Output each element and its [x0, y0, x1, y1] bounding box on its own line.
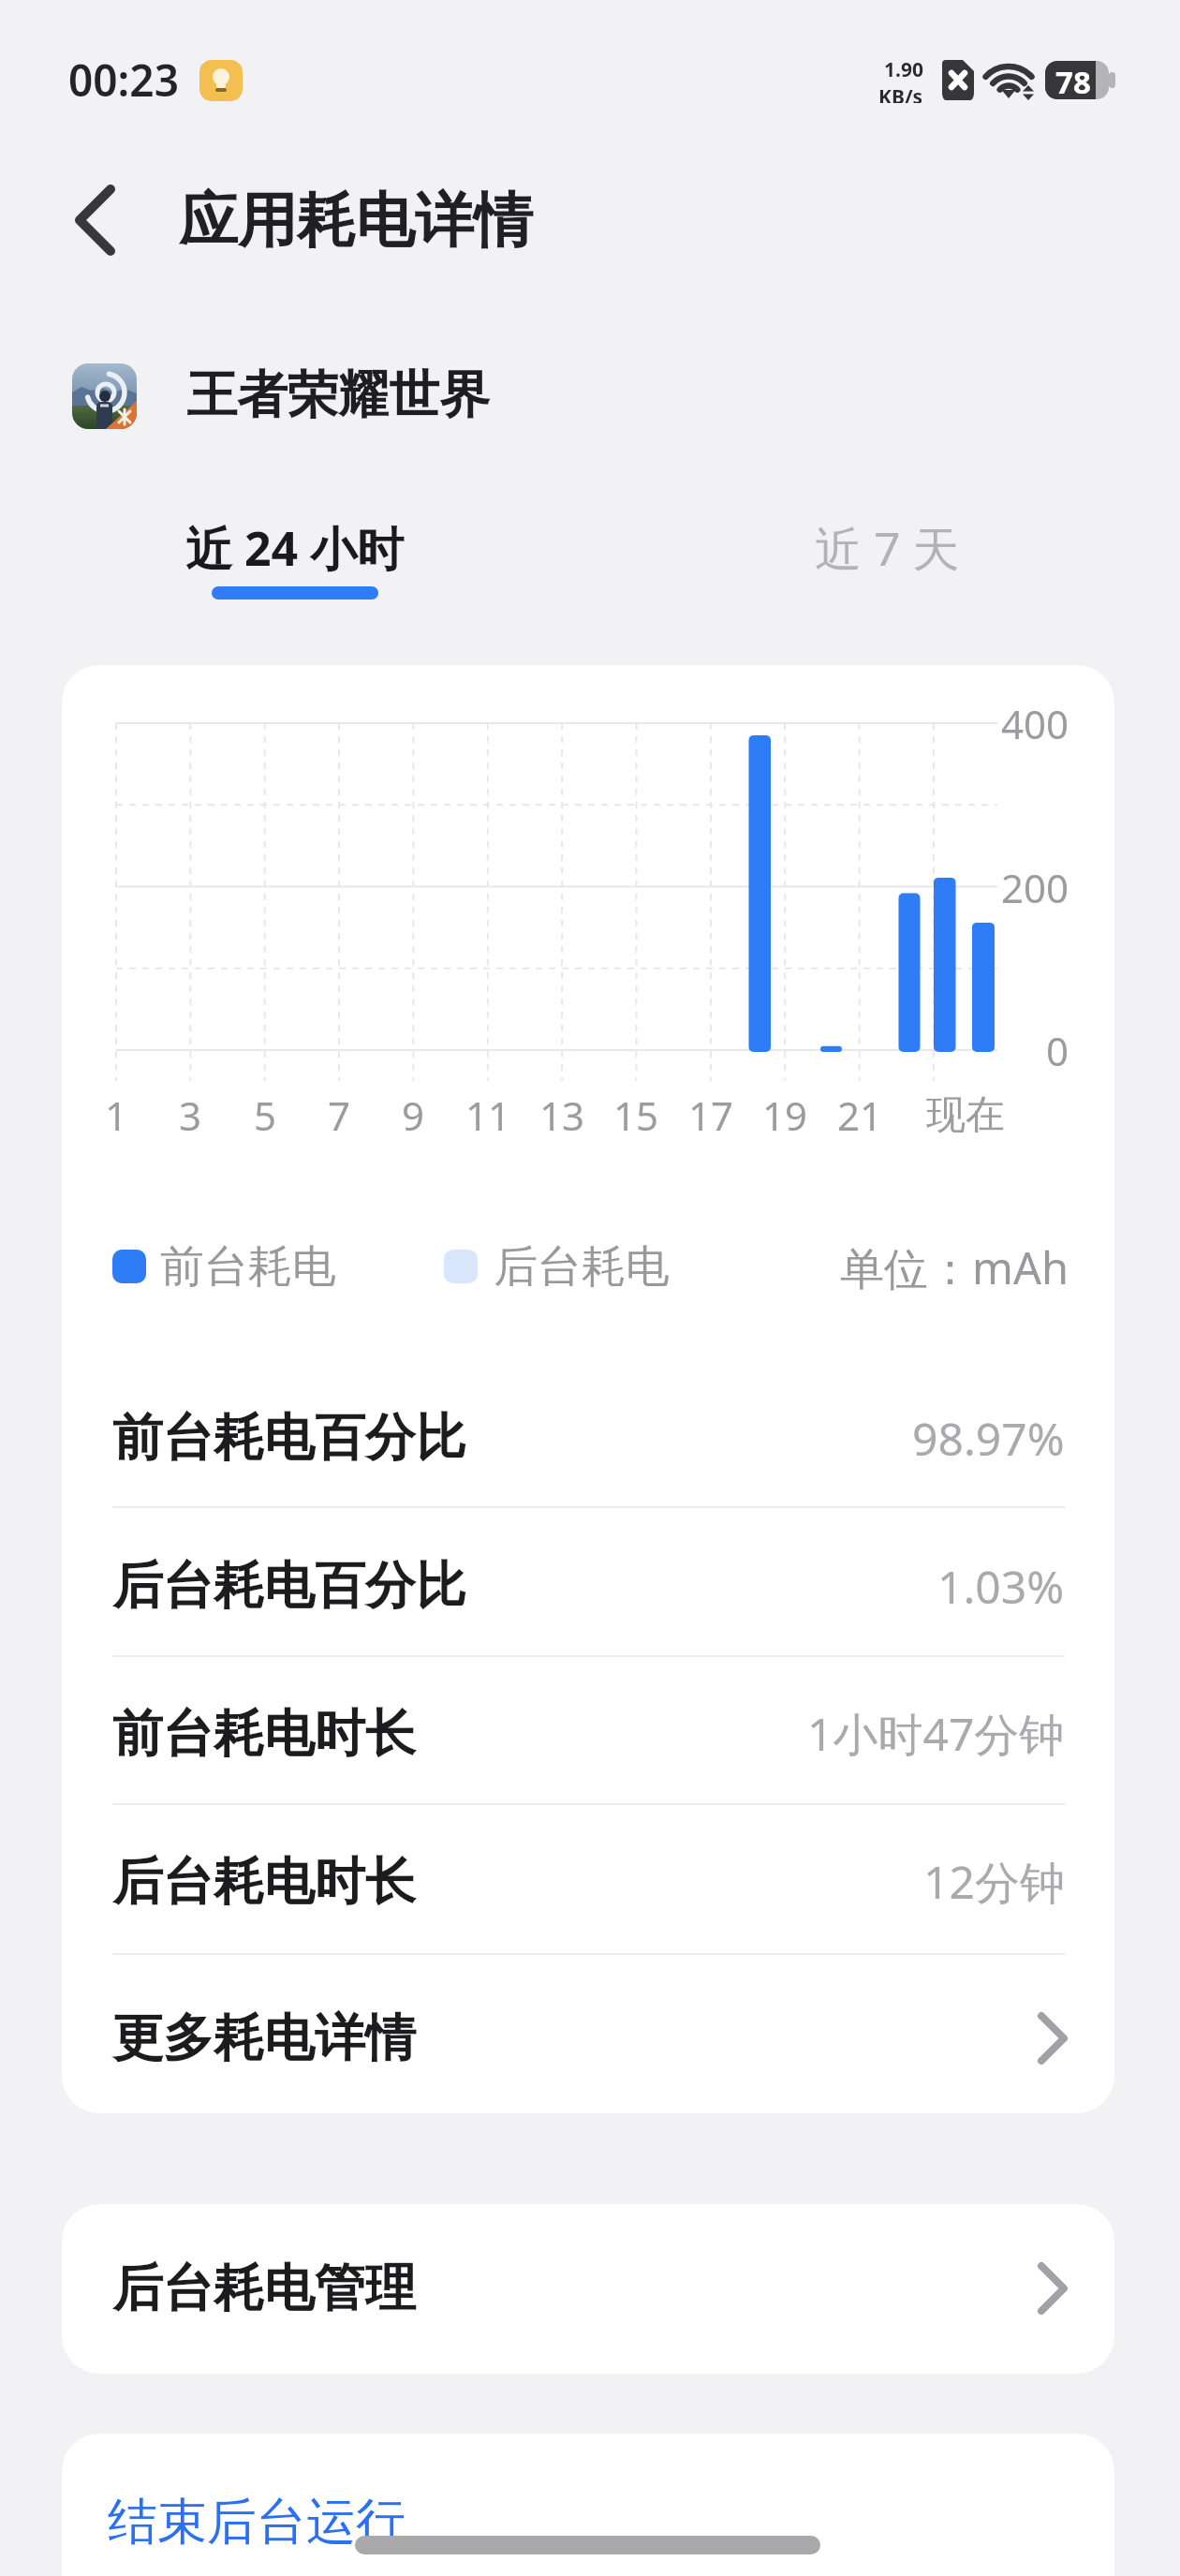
staticText: 19 [762, 1088, 808, 1142]
staticText: 王者荣耀世界 [186, 363, 490, 427]
staticText: 更多耗电详情 [112, 2006, 416, 2070]
button[interactable] [56, 173, 150, 267]
staticText: 98.97% [912, 1408, 1065, 1469]
staticText: 单位：mAh [840, 1237, 1069, 1297]
staticText: 7 [328, 1088, 351, 1142]
staticText: 1.90 [884, 56, 923, 83]
staticText: 现在 [926, 1090, 1005, 1140]
staticText: 0 [1046, 1024, 1069, 1077]
staticText: 前台耗电 [160, 1239, 336, 1295]
button[interactable]: 近 24 小时 [169, 506, 431, 618]
staticText: 15 [613, 1088, 659, 1142]
staticText: 后台耗电 [494, 1239, 670, 1295]
staticText: 近 7 天 [815, 516, 960, 580]
staticText: 17 [688, 1088, 734, 1142]
staticText: 前台耗电时长 [112, 1702, 416, 1766]
staticText: 00:23 [68, 51, 179, 110]
button[interactable]: 结束后台运行 [62, 2434, 1114, 2576]
staticText: 5 [254, 1088, 277, 1142]
staticText: 21 [837, 1088, 883, 1142]
staticText: 1小时47分钟 [807, 1703, 1065, 1765]
staticText: 前台耗电百分比 [112, 1406, 466, 1470]
staticText: 11 [465, 1088, 511, 1142]
staticText: 结束后台运行 [108, 2491, 406, 2554]
button[interactable]: 更多耗电详情 [62, 1965, 1114, 2111]
staticText: 3 [179, 1088, 202, 1142]
staticText: 12分钟 [923, 1851, 1065, 1913]
staticText: 近 24 小时 [185, 516, 405, 580]
staticText: 1.03% [937, 1556, 1065, 1617]
button[interactable]: 后台耗电管理 [62, 2204, 1114, 2374]
staticText: 78 [1055, 61, 1091, 100]
staticText: KB/s [878, 83, 923, 103]
button[interactable]: 近 7 天 [796, 506, 1002, 618]
staticText: 后台耗电时长 [112, 1850, 416, 1914]
staticText: 200 [1001, 861, 1069, 914]
staticText: 应用耗电详情 [179, 184, 533, 258]
staticText: 后台耗电管理 [112, 2257, 416, 2320]
staticText: 13 [539, 1088, 585, 1142]
staticText: 1 [105, 1088, 128, 1142]
staticText: 9 [402, 1088, 425, 1142]
staticText: 400 [1001, 697, 1069, 750]
staticText: 后台耗电百分比 [112, 1554, 466, 1618]
